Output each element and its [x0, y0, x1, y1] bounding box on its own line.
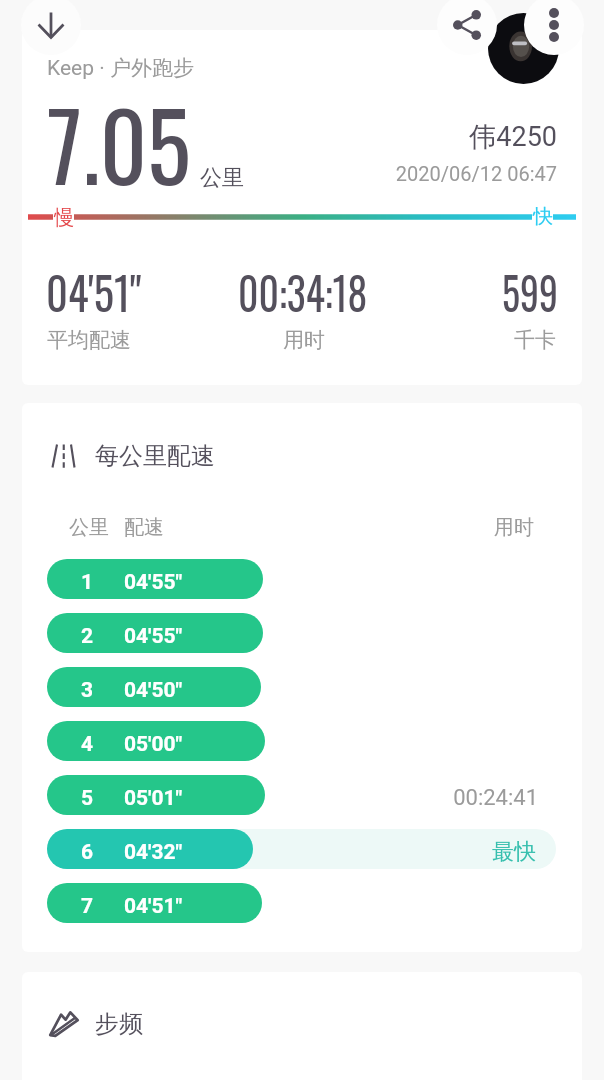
staticText: 7.05	[47, 73, 191, 212]
staticText: 配速	[124, 515, 164, 540]
staticText: 5	[81, 786, 94, 811]
staticText: 公里	[69, 515, 109, 540]
button[interactable]: Profile	[488, 13, 559, 84]
staticText: 599	[502, 258, 558, 325]
staticText: 快	[533, 204, 553, 229]
button[interactable]: Download	[21, 0, 81, 55]
staticText: Keep · 户外跑步	[47, 55, 194, 81]
staticText: 2020/06/12 06:47	[22, 162, 557, 185]
staticText: 04'55"	[124, 624, 183, 649]
staticText: 步频	[95, 1009, 143, 1039]
staticText: 3	[81, 678, 94, 703]
staticText: 用时	[494, 515, 534, 540]
staticText: 00:24:41	[22, 785, 538, 811]
staticText: 04'50"	[124, 678, 183, 703]
staticText: 慢	[54, 205, 74, 230]
staticText: 05'01"	[124, 786, 183, 811]
staticText: 伟4250	[22, 120, 557, 154]
staticText: 04'32"	[124, 840, 183, 865]
button[interactable]: More options	[524, 0, 584, 55]
staticText: 最快	[492, 838, 536, 866]
staticText: 平均配速	[47, 327, 131, 353]
staticText: 05'00"	[124, 732, 183, 757]
staticText: 7	[81, 894, 94, 919]
staticText: 00:34:18	[238, 258, 367, 325]
staticText: 2	[81, 624, 94, 649]
staticText: 04'51"	[46, 258, 142, 325]
staticText: 04'55"	[124, 570, 183, 595]
staticText: 04'51"	[124, 894, 183, 919]
staticText: 每公里配速	[95, 441, 215, 471]
staticText: 6	[81, 840, 94, 865]
staticText: 用时	[283, 327, 325, 353]
button[interactable]: Share	[437, 0, 497, 55]
staticText: 1	[81, 570, 94, 595]
staticText: 千卡	[514, 327, 556, 353]
staticText: 4	[81, 732, 94, 757]
staticText: 公里	[200, 164, 244, 192]
